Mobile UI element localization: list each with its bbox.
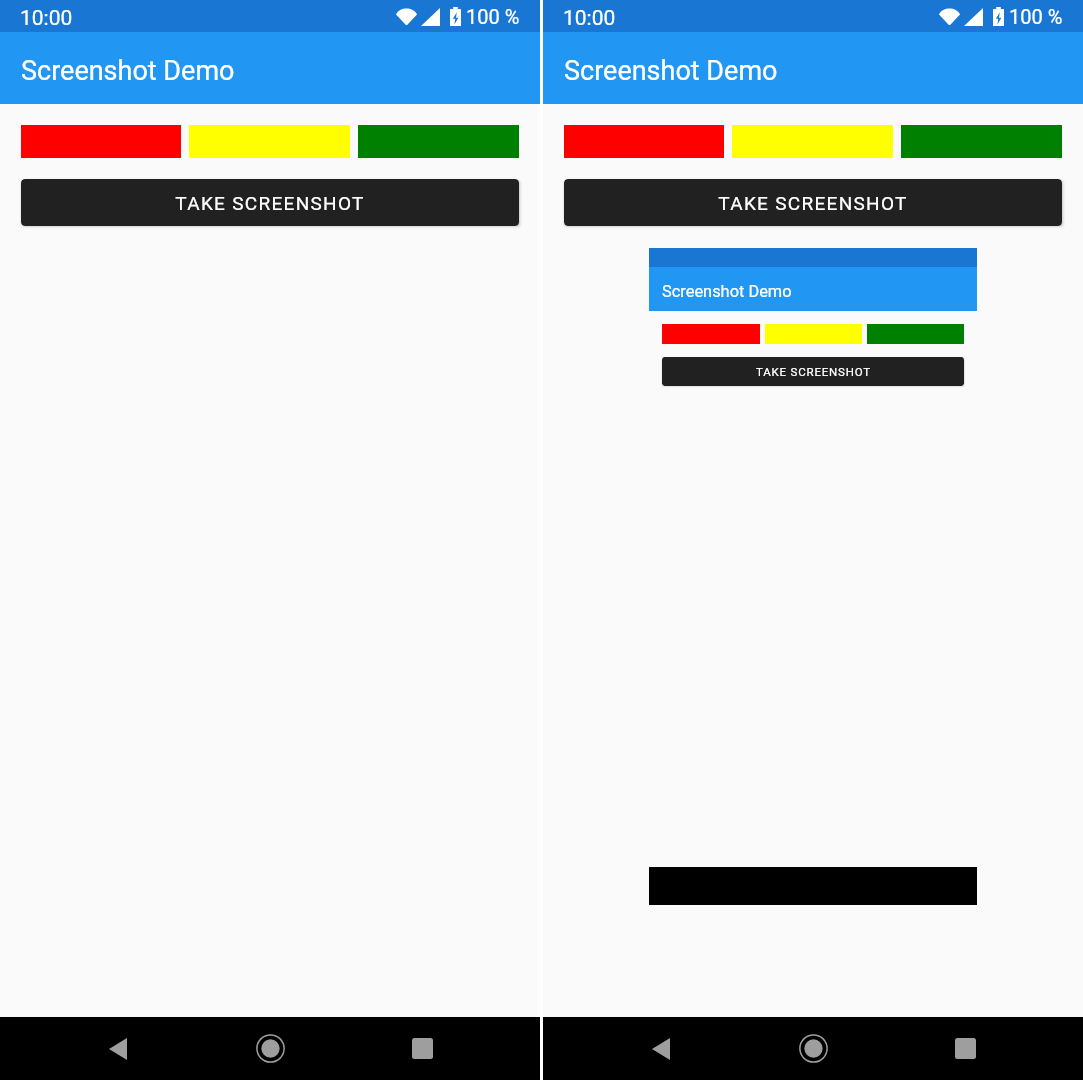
staticText: Screenshot Demo xyxy=(662,282,792,301)
button[interactable]: Recent apps xyxy=(889,1017,1041,1080)
button[interactable]: Back xyxy=(42,1017,194,1080)
staticText: TAKE SCREENSHOT xyxy=(756,365,871,379)
staticText: TAKE SCREENSHOT xyxy=(175,192,365,214)
staticText: Screenshot Demo xyxy=(21,55,235,87)
button[interactable]: TAKE SCREENSHOT xyxy=(662,357,964,386)
staticText: 10:00 xyxy=(20,6,73,31)
staticText: TAKE SCREENSHOT xyxy=(718,192,908,214)
staticText: Screenshot Demo xyxy=(564,55,778,87)
button[interactable]: TAKE SCREENSHOT xyxy=(564,179,1062,226)
button[interactable]: Home xyxy=(194,1017,346,1080)
button[interactable]: Recent apps xyxy=(346,1017,498,1080)
button[interactable]: Back xyxy=(585,1017,737,1080)
staticText: 100 % xyxy=(1009,5,1063,28)
staticText: 10:00 xyxy=(563,6,616,31)
button[interactable]: TAKE SCREENSHOT xyxy=(21,179,519,226)
button[interactable]: Home xyxy=(737,1017,889,1080)
staticText: 100 % xyxy=(466,5,520,28)
